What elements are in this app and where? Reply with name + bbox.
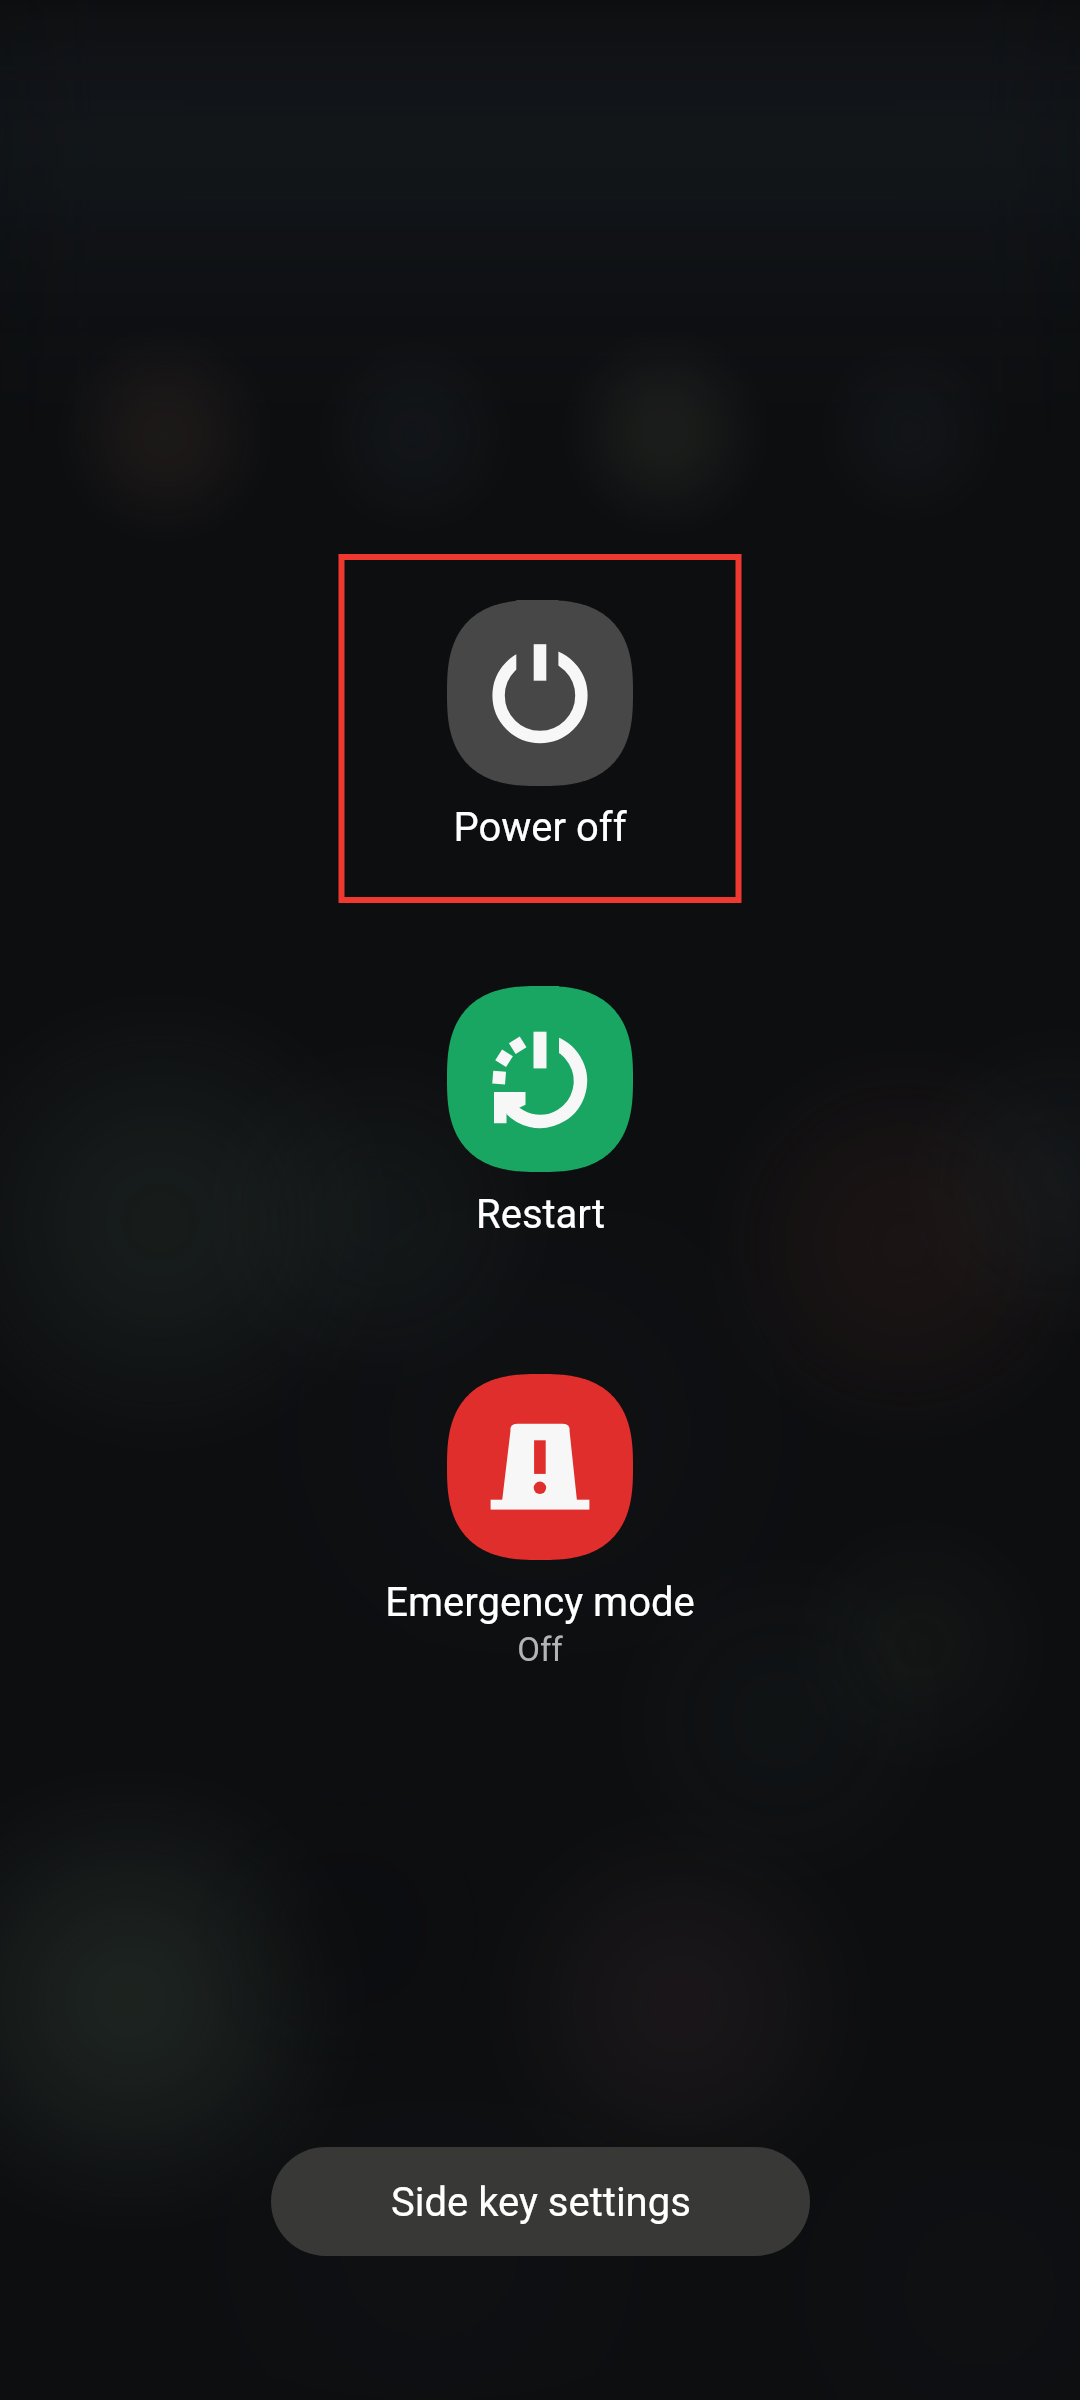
staticText: Emergency mode xyxy=(385,1579,695,1626)
staticText: Restart xyxy=(476,1191,605,1238)
button[interactable]: Side key settings xyxy=(271,2147,810,2256)
button[interactable]: Restart xyxy=(390,986,690,1237)
button[interactable]: Emergency mode xyxy=(330,1374,750,1670)
button[interactable]: Power off xyxy=(390,600,690,850)
staticText: Off xyxy=(517,1630,563,1669)
staticText: Side key settings xyxy=(391,2179,691,2226)
staticText: Power off xyxy=(453,804,627,851)
